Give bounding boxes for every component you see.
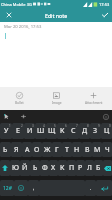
staticText: П bbox=[69, 163, 75, 173]
staticText: Edit note bbox=[45, 12, 68, 19]
button[interactable]: Р bbox=[76, 160, 85, 176]
staticText: Е bbox=[16, 126, 20, 136]
button[interactable]: Г bbox=[52, 142, 62, 157]
button[interactable]: Bullet bbox=[0, 87, 38, 110]
button[interactable]: К bbox=[58, 160, 67, 176]
button[interactable]: Т bbox=[62, 142, 72, 157]
button[interactable]: Ц bbox=[101, 123, 112, 139]
button[interactable]: П bbox=[67, 160, 76, 176]
button[interactable]: Backspace bbox=[103, 160, 112, 176]
staticText: Я bbox=[14, 145, 19, 155]
button[interactable]: О bbox=[32, 142, 42, 157]
staticText: 0 bbox=[109, 124, 111, 128]
staticText: 2 bbox=[21, 124, 23, 128]
staticText: Ю bbox=[12, 163, 19, 173]
staticText: China Mobile 3G bbox=[1, 2, 32, 7]
staticText: З bbox=[93, 126, 98, 136]
staticText: 12# bbox=[3, 185, 12, 192]
button[interactable]: Numbers bbox=[0, 180, 14, 196]
staticText: С bbox=[71, 126, 76, 136]
staticText: Ш bbox=[37, 126, 45, 136]
button[interactable]: М bbox=[92, 142, 102, 157]
staticText: 1 bbox=[9, 124, 11, 128]
button[interactable]: К bbox=[57, 123, 68, 139]
staticText: Image bbox=[52, 101, 62, 105]
button[interactable]: Д bbox=[79, 123, 90, 139]
button[interactable]: Е bbox=[12, 123, 24, 139]
staticText: Ь bbox=[3, 145, 8, 155]
staticText: Ч bbox=[105, 145, 110, 155]
staticText: У bbox=[4, 126, 9, 136]
staticText: 5 bbox=[54, 124, 56, 128]
button[interactable]: Save note bbox=[100, 10, 110, 20]
staticText: 8 bbox=[87, 124, 89, 128]
button[interactable]: Х bbox=[49, 160, 58, 176]
button[interactable]: Л bbox=[85, 160, 94, 176]
button[interactable]: Attachment bbox=[75, 87, 112, 110]
button[interactable]: И bbox=[24, 123, 35, 139]
staticText: Й bbox=[22, 163, 28, 173]
button[interactable]: Move cursor bbox=[19, 112, 28, 121]
button[interactable]: З bbox=[90, 123, 101, 139]
button[interactable]: Emoji bbox=[14, 180, 28, 196]
button[interactable]: Ь bbox=[0, 142, 11, 157]
button[interactable]: А bbox=[22, 142, 32, 157]
button[interactable]: Б bbox=[94, 160, 103, 176]
staticText: Б bbox=[96, 163, 101, 173]
button[interactable]: Н bbox=[72, 142, 82, 157]
staticText: М bbox=[94, 145, 101, 155]
staticText: , bbox=[33, 185, 35, 192]
staticText: Bullet bbox=[15, 101, 24, 105]
staticText: 17:53 bbox=[99, 2, 110, 7]
button[interactable]: Й bbox=[20, 160, 30, 176]
staticText: . bbox=[90, 185, 92, 192]
button[interactable]: Ф bbox=[40, 160, 49, 176]
staticText: Г bbox=[55, 145, 59, 155]
staticText: К bbox=[60, 163, 65, 173]
staticText: Attachment bbox=[85, 101, 103, 105]
staticText: Д bbox=[82, 126, 88, 136]
staticText: Т bbox=[65, 145, 69, 155]
staticText: Л bbox=[87, 163, 92, 173]
staticText: И bbox=[27, 126, 33, 136]
staticText: Ь bbox=[33, 163, 38, 173]
button[interactable]: Emoji bbox=[101, 112, 111, 122]
button[interactable]: Ж bbox=[42, 142, 52, 157]
button[interactable]: Я bbox=[11, 142, 22, 157]
staticText: Х bbox=[51, 163, 56, 173]
button[interactable]: Image bbox=[38, 87, 75, 110]
staticText: Mar 20 2016, 17:53 bbox=[4, 24, 42, 30]
staticText: Ф bbox=[42, 163, 48, 173]
staticText: В bbox=[85, 145, 90, 155]
staticText: 4 bbox=[43, 124, 45, 128]
button[interactable]: Shift bbox=[0, 160, 10, 176]
staticText: Н bbox=[74, 145, 80, 155]
staticText: О bbox=[34, 145, 40, 155]
button[interactable]: В bbox=[82, 142, 92, 157]
button[interactable]: Comma bbox=[28, 180, 39, 196]
staticText: Ц bbox=[104, 126, 110, 136]
staticText: А bbox=[25, 145, 30, 155]
staticText: 3 bbox=[32, 124, 34, 128]
button[interactable]: Enter bbox=[96, 180, 112, 196]
button[interactable]: Ш bbox=[35, 123, 46, 139]
staticText: 9 bbox=[98, 124, 100, 128]
staticText: Р bbox=[78, 163, 83, 173]
staticText: 6 bbox=[65, 124, 67, 128]
button[interactable]: Ь bbox=[30, 160, 40, 176]
button[interactable]: Щ bbox=[46, 123, 57, 139]
button[interactable]: Close bbox=[4, 10, 14, 20]
staticText: К bbox=[60, 126, 65, 136]
button[interactable]: Clipboard bbox=[2, 112, 11, 121]
staticText: 7 bbox=[76, 124, 78, 128]
button[interactable]: Ч bbox=[102, 142, 112, 157]
staticText: Щ bbox=[48, 126, 56, 136]
button[interactable]: У bbox=[0, 123, 12, 139]
button[interactable]: С bbox=[68, 123, 79, 139]
button[interactable]: Period bbox=[85, 180, 96, 196]
button[interactable]: Ю bbox=[10, 160, 20, 176]
staticText: Ж bbox=[44, 145, 51, 155]
